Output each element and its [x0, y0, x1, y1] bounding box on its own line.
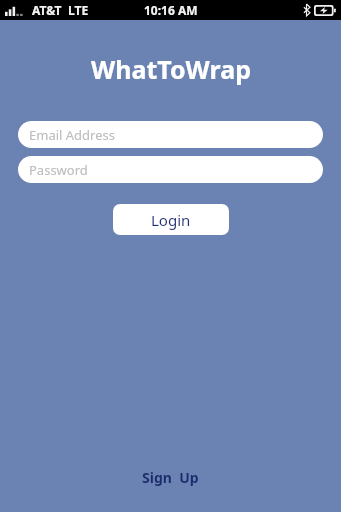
button[interactable]: Email Address: [18, 121, 323, 148]
staticText: Password: [29, 161, 88, 179]
button[interactable]: Sign Up: [128, 463, 213, 492]
staticText: Sign Up: [142, 468, 199, 487]
staticText: 10:16 AM: [144, 2, 198, 18]
staticText: Login: [151, 210, 191, 230]
button[interactable]: Password: [18, 156, 323, 183]
staticText: Email Address: [29, 126, 115, 144]
staticText: LTE: [68, 2, 89, 18]
staticText: WhatToWrap: [91, 52, 251, 86]
button[interactable]: Login: [113, 204, 229, 235]
staticText: AT&T: [32, 2, 62, 18]
